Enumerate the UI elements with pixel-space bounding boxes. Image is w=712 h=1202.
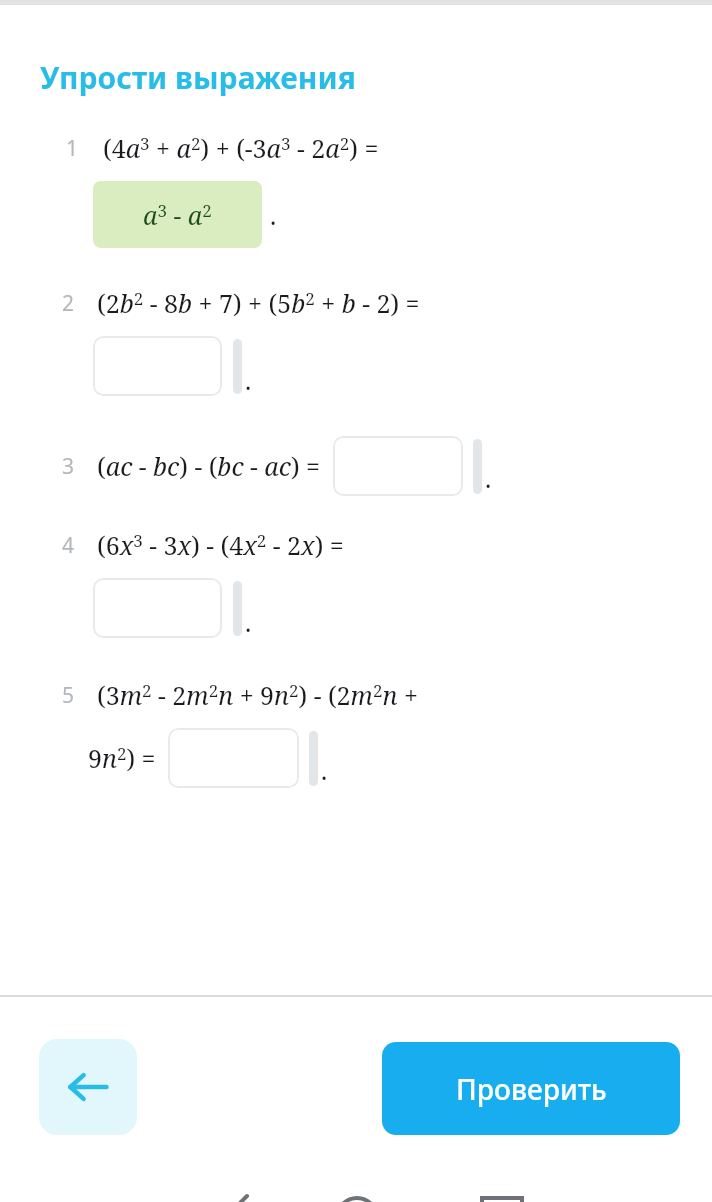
staticText: (ac - bc) - (bc - ac) = [97, 449, 321, 483]
staticText: 5 [62, 681, 75, 710]
button[interactable]: Поле для ответа [93, 336, 222, 396]
staticText: 4 [62, 531, 75, 560]
button[interactable]: Назад [39, 1039, 137, 1135]
button[interactable]: Проверить [382, 1042, 680, 1135]
staticText: . [485, 461, 492, 495]
staticText: Проверить [456, 1070, 607, 1108]
staticText: . [321, 753, 328, 787]
staticText: 2 [62, 289, 75, 318]
staticText: . [245, 605, 252, 639]
staticText: (2b2 - 8b + 7) + (5b2 + b - 2) = [97, 286, 420, 320]
staticText: (3m2 - 2m2n + 9n2) - (2m2n + [97, 678, 418, 712]
staticText: a3 - a2 [143, 198, 212, 232]
button[interactable]: Поле для ответа [168, 728, 299, 788]
staticText: (6x3 - 3x) - (4x2 - 2x) = [97, 528, 344, 562]
staticText: 9n2) = [88, 741, 156, 775]
button[interactable]: Поле для ответа [93, 578, 222, 638]
staticText: 1 [66, 134, 79, 163]
staticText: . [270, 198, 277, 232]
staticText: (4a3 + a2) + (-3a3 - 2a2) = [103, 131, 379, 165]
staticText: . [245, 363, 252, 397]
staticText: Упрости выражения [40, 57, 356, 98]
button[interactable]: a3 - a2 [93, 181, 262, 248]
staticText: 3 [62, 452, 75, 481]
button[interactable]: Поле для ответа [333, 436, 463, 496]
